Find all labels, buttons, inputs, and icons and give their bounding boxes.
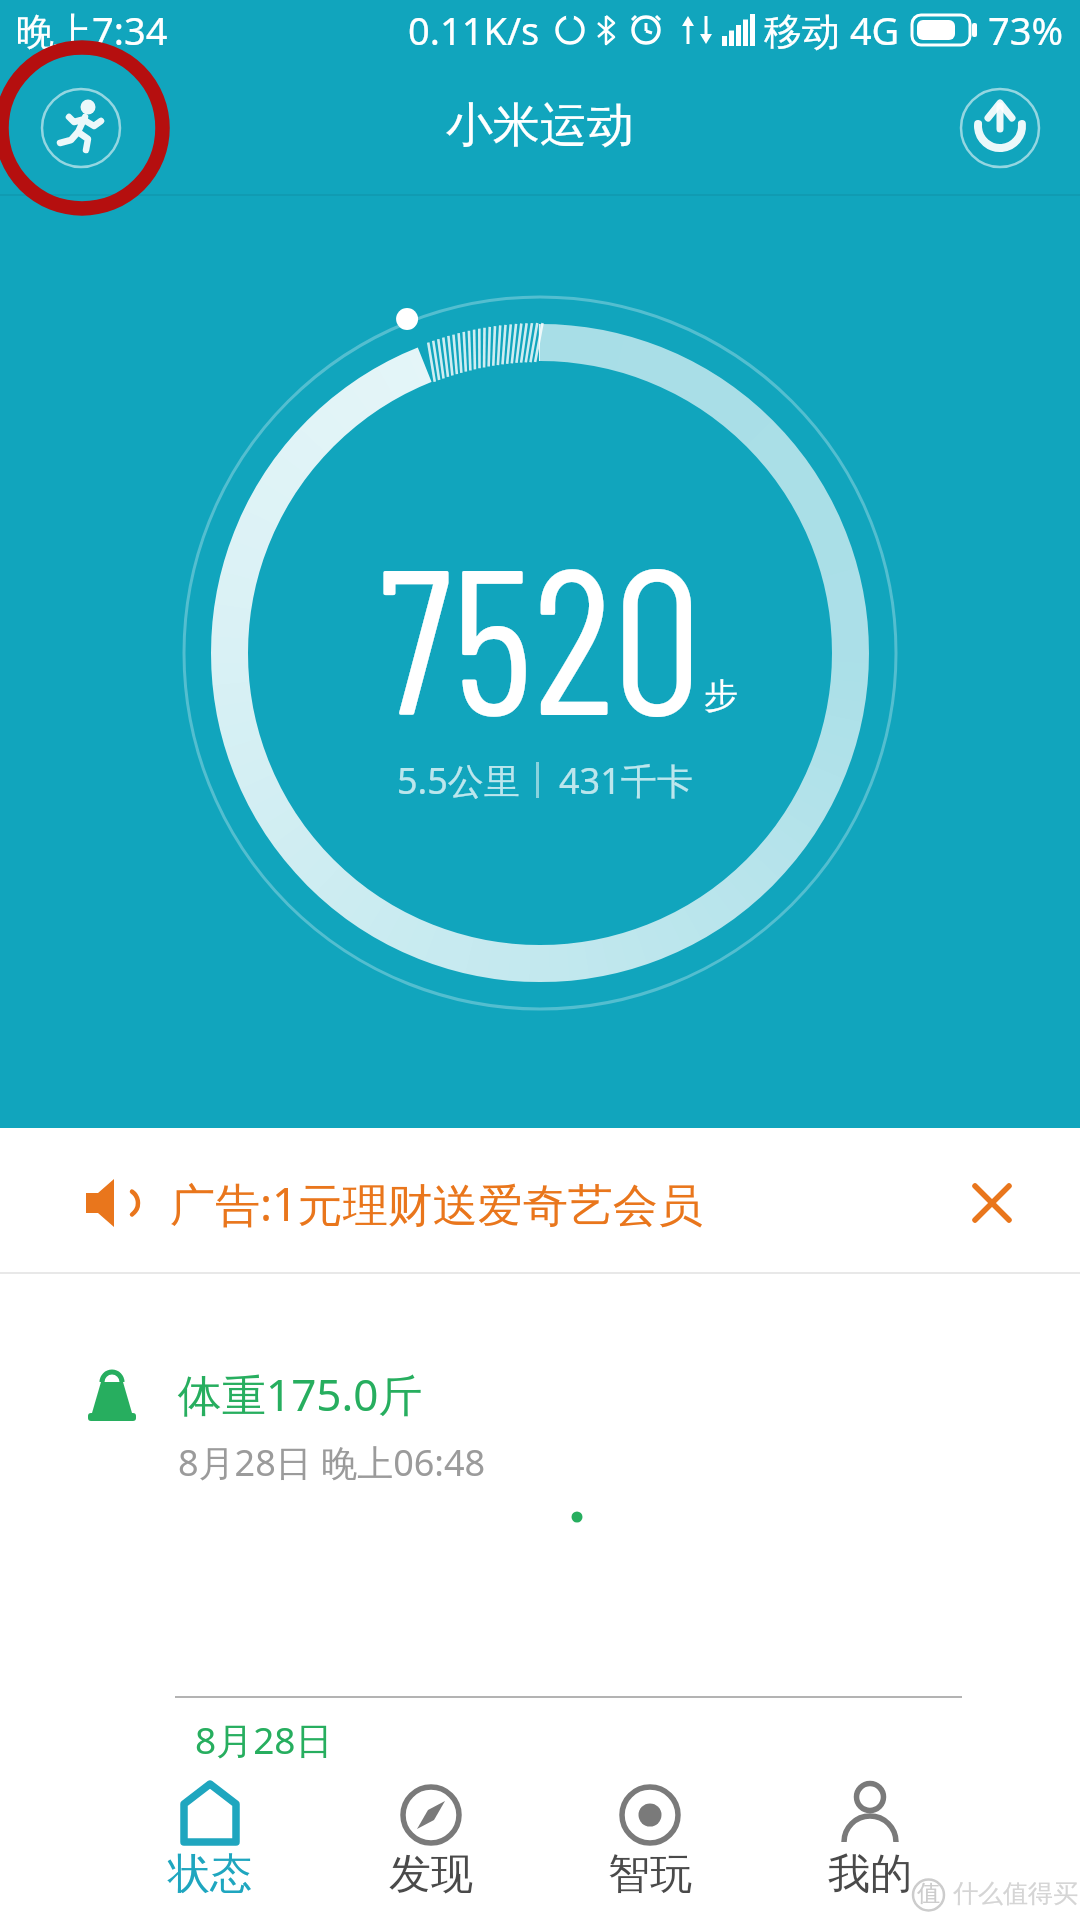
staticText: 8月28日 [195, 1714, 333, 1765]
button[interactable] [954, 1165, 1030, 1241]
button[interactable]: 体重175.0斤 [0, 1340, 1080, 1500]
button[interactable]: 智玩 [570, 1782, 730, 1920]
staticText: 小米运动 [446, 96, 634, 155]
staticText: 431千卡 [559, 756, 693, 805]
staticText: 什么值得买 [953, 1878, 1078, 1909]
button[interactable]: 状态 [130, 1782, 290, 1920]
staticText: 智玩 [608, 1848, 692, 1901]
button[interactable]: 发现 [351, 1782, 511, 1920]
staticText: 我的 [828, 1848, 912, 1901]
staticText: 移动 4G [764, 4, 900, 56]
button[interactable]: 广告:1元理财送爱奇艺会员 [0, 1134, 1080, 1272]
staticText: 晚上7:34 [16, 4, 168, 56]
button[interactable] [960, 88, 1040, 168]
staticText: 7520 [379, 510, 702, 756]
staticText: 体重175.0斤 [178, 1364, 423, 1424]
button[interactable]: 我的 [790, 1782, 950, 1920]
staticText: 5.5公里 [397, 756, 520, 805]
staticText: 0.11K/s [408, 4, 540, 56]
staticText: 值 [917, 1879, 940, 1908]
staticText: 状态 [168, 1848, 252, 1901]
button[interactable] [41, 88, 121, 168]
staticText: 广告:1元理财送爱奇艺会员 [170, 1173, 703, 1234]
staticText: 8月28日 晚上06:48 [178, 1438, 486, 1487]
staticText: 步 [704, 674, 738, 717]
staticText: 发现 [389, 1848, 473, 1901]
staticText: 73% [988, 4, 1064, 56]
